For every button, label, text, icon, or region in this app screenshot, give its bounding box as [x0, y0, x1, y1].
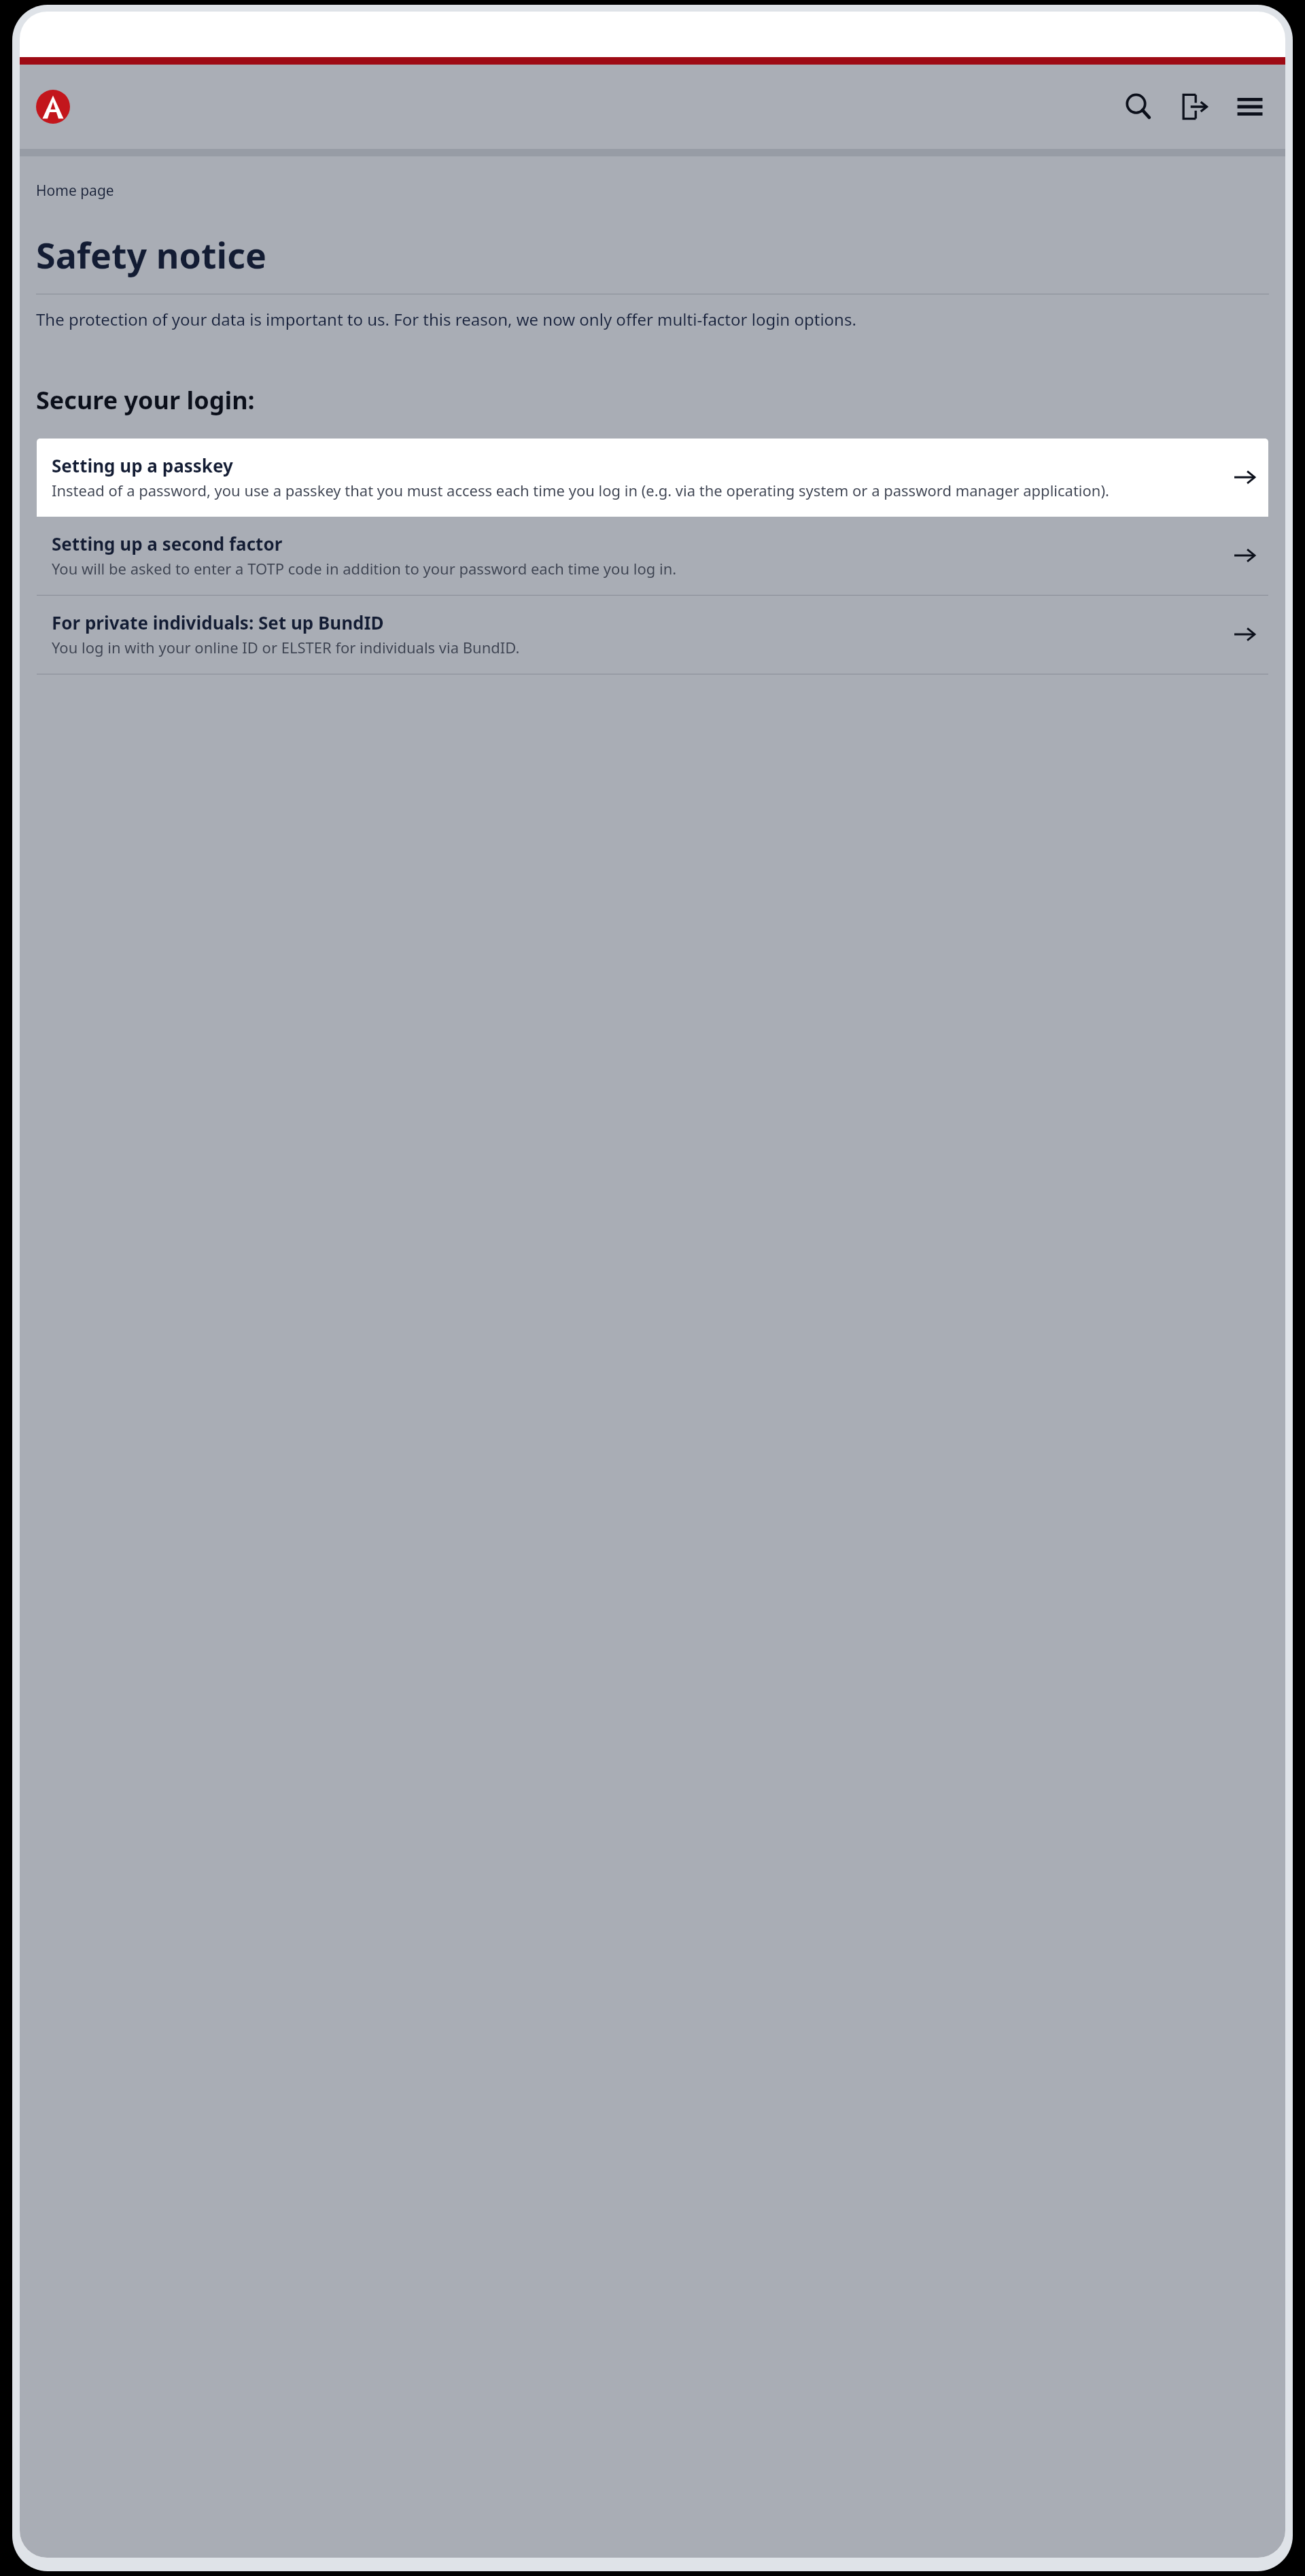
staticText: You log in with your online ID or ELSTER…	[52, 637, 520, 657]
staticText: Setting up a second factor	[52, 532, 283, 555]
staticText: Secure your login:	[36, 383, 255, 417]
button[interactable]: Bundesagentur für Arbeit home	[35, 88, 71, 125]
button[interactable]: For private individuals: Set up BundID	[37, 596, 1268, 674]
button[interactable]: Menu	[1228, 85, 1272, 128]
staticText: Setting up a passkey	[52, 453, 233, 477]
button[interactable]: Log out	[1172, 85, 1216, 128]
staticText: Safety notice	[36, 230, 267, 279]
button[interactable]	[37, 674, 1268, 710]
staticText: Instead of a password, you use a passkey…	[52, 480, 1109, 500]
button[interactable]: Home page	[20, 178, 130, 203]
button[interactable]: Search	[1117, 85, 1160, 128]
staticText: The protection of your data is important…	[36, 308, 856, 330]
button[interactable]: Setting up a passkey	[37, 439, 1268, 517]
button[interactable]: Setting up a second factor	[37, 517, 1268, 595]
staticText: For private individuals: Set up BundID	[52, 611, 384, 634]
staticText: You will be asked to enter a TOTP code i…	[52, 558, 677, 579]
